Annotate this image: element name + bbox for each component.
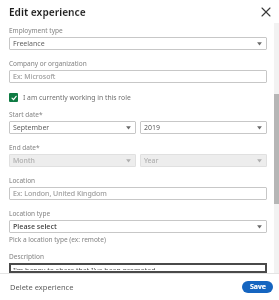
staticText: Description (9, 252, 44, 261)
staticText: Month (13, 156, 35, 166)
button[interactable]: Month (9, 154, 136, 167)
staticText: Location type (9, 209, 51, 218)
staticText: Location (9, 176, 36, 185)
button[interactable]: I'm happy to share that I've been promot… (9, 263, 267, 273)
button[interactable]: September (9, 121, 136, 134)
button[interactable]: Ex: London, United Kingdom (9, 187, 267, 200)
button[interactable]: Delete experience (0, 279, 80, 295)
staticText: Year (144, 156, 159, 166)
button[interactable]: Close (259, 5, 273, 19)
button[interactable]: Year (140, 154, 267, 167)
staticText: Start date* (9, 110, 43, 119)
button[interactable]: I am currently working in this role (9, 92, 131, 103)
button[interactable]: 2019 (140, 121, 267, 134)
staticText: Company or organization (9, 59, 87, 68)
button[interactable]: Ex: Microsoft (9, 70, 267, 83)
staticText: Edit experience (9, 5, 86, 19)
staticText: Ex: London, United Kingdom (13, 189, 107, 199)
staticText: I am currently working in this role (23, 93, 131, 102)
button[interactable]: Freelance (9, 37, 267, 50)
staticText: 2019 (144, 123, 161, 133)
button[interactable]: Please select (9, 220, 267, 233)
staticText: Pick a location type (ex: remote) (9, 235, 106, 244)
staticText: Please select (13, 222, 57, 232)
staticText: September (13, 123, 50, 133)
staticText: Employment type (9, 26, 63, 35)
staticText: End date* (9, 143, 40, 152)
button[interactable]: Save (242, 281, 273, 293)
staticText: Ex: Microsoft (13, 72, 56, 82)
staticText: I'm happy to share that I've been promot… (13, 266, 162, 270)
staticText: Save (250, 282, 266, 292)
staticText: Freelance (13, 39, 45, 49)
